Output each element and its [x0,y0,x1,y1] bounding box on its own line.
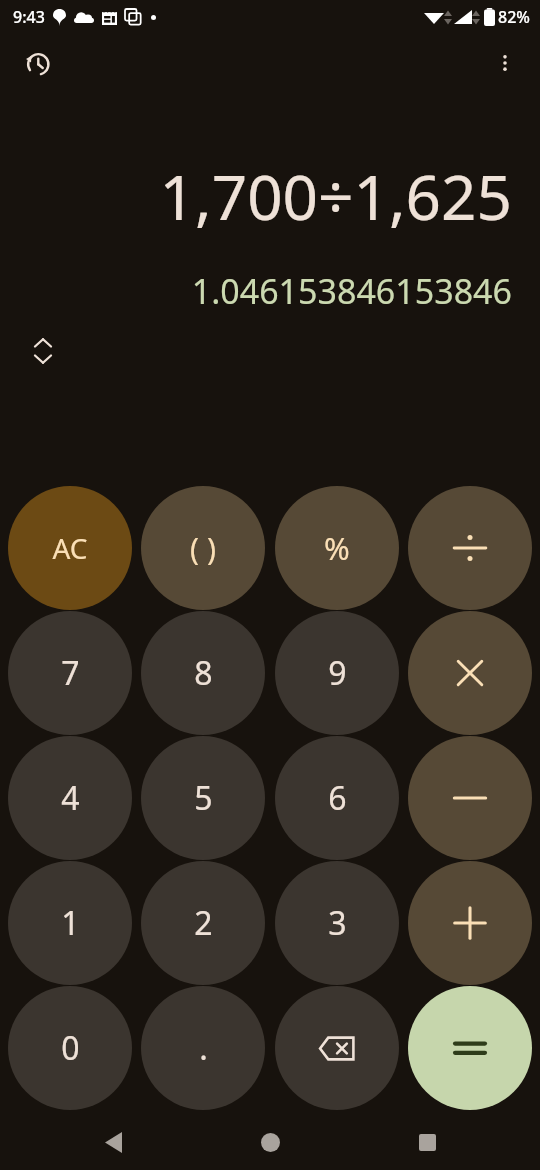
staticText: 1 [61,901,80,945]
button[interactable]: Home [249,1121,291,1163]
staticText: 2 [194,901,213,945]
staticText: . [199,1026,208,1070]
button[interactable]: 8 [141,611,265,735]
staticText: % [324,527,350,569]
button[interactable]: . [141,986,265,1110]
staticText: AC [52,529,88,567]
button[interactable]: Back [92,1121,134,1163]
staticText: 4 [61,776,80,820]
staticText: 8 [194,651,213,695]
button[interactable]: 3 [275,861,399,985]
staticText: 9 [328,651,347,695]
button[interactable]: Recent apps [406,1121,448,1163]
staticText: 3 [328,901,347,945]
button[interactable]: % [275,486,399,610]
button[interactable]: Minus [408,736,532,860]
staticText: 1.046153846153846 [0,268,512,314]
button[interactable]: 7 [8,611,132,735]
staticText: 82% [498,6,530,28]
button[interactable]: History [14,40,60,86]
button[interactable]: 5 [141,736,265,860]
button[interactable]: Multiply [408,611,532,735]
button[interactable]: Divide [408,486,532,610]
staticText: 0 [61,1026,80,1070]
button[interactable]: Equals [408,986,532,1110]
button[interactable]: ( ) [141,486,265,610]
staticText: ( ) [190,528,216,569]
button[interactable]: 4 [8,736,132,860]
button[interactable]: Expand result [24,332,62,370]
staticText: 9:43 [13,6,45,28]
staticText: 5 [194,776,213,820]
staticText: 6 [328,776,347,820]
button[interactable]: More options [482,40,528,86]
staticText: 7 [61,651,80,695]
button[interactable]: 6 [275,736,399,860]
button[interactable]: Backspace [275,986,399,1110]
button[interactable]: 9 [275,611,399,735]
staticText: 1,700÷1,625 [0,154,512,238]
button[interactable]: AC [8,486,132,610]
button[interactable]: 1 [8,861,132,985]
button[interactable]: 0 [8,986,132,1110]
button[interactable]: Plus [408,861,532,985]
button[interactable]: 2 [141,861,265,985]
